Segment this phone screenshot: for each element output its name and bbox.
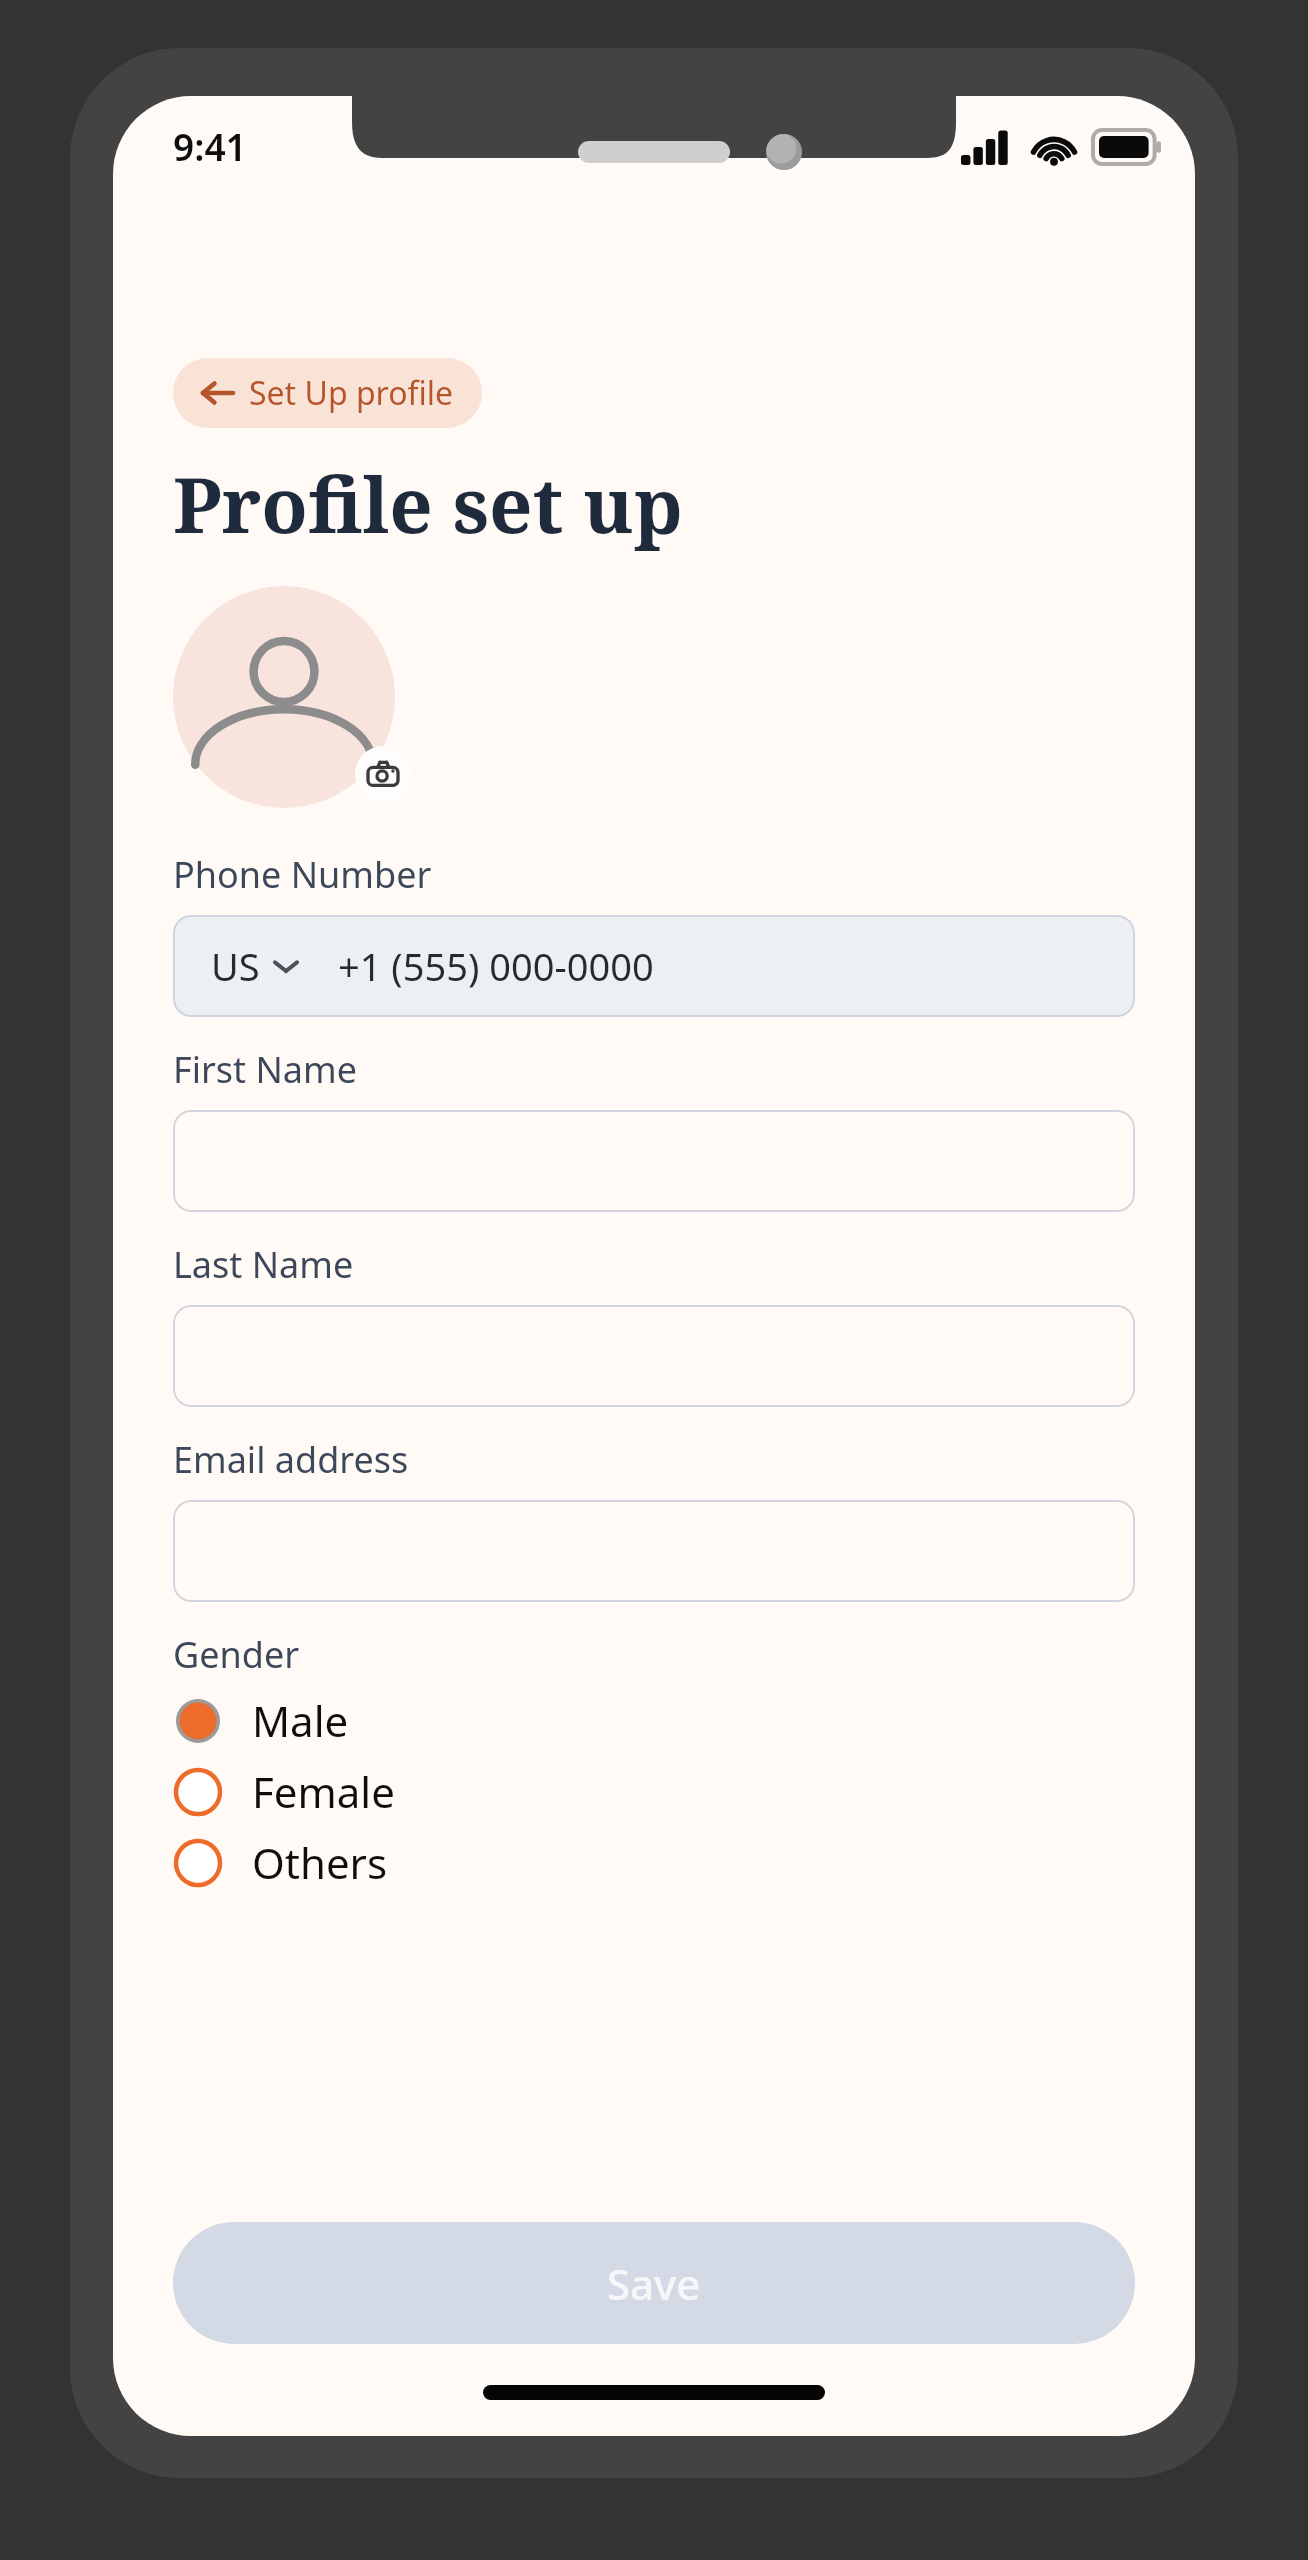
staticText: Set Up profile [249, 371, 454, 415]
button[interactable]: Back [173, 358, 482, 428]
staticText: Male [252, 1692, 349, 1749]
staticText: 9:41 [173, 121, 247, 171]
button[interactable] [173, 1110, 1135, 1212]
staticText: First Name [173, 1045, 357, 1094]
other: Back [201, 377, 233, 409]
staticText: Female [252, 1763, 395, 1820]
button[interactable]: Male [173, 1685, 1135, 1756]
button[interactable] [173, 1305, 1135, 1407]
button[interactable] [173, 1500, 1135, 1602]
staticText: Profile set up [173, 452, 683, 556]
button[interactable]: Others [173, 1827, 1135, 1898]
staticText: Gender [173, 1630, 300, 1679]
button[interactable]: US [173, 915, 1135, 1017]
staticText: Phone Number [173, 850, 432, 899]
staticText: Save [607, 2255, 701, 2312]
staticText: Others [252, 1834, 388, 1891]
staticText: US [211, 940, 260, 992]
button[interactable]: Change profile photo [173, 586, 395, 808]
button[interactable]: Save [173, 2222, 1135, 2344]
button[interactable]: Female [173, 1756, 1135, 1827]
staticText: +1 (555) 000-0000 [338, 940, 654, 992]
staticText: Last Name [173, 1240, 354, 1289]
other: Select country code [272, 952, 300, 980]
staticText: Email address [173, 1435, 409, 1484]
